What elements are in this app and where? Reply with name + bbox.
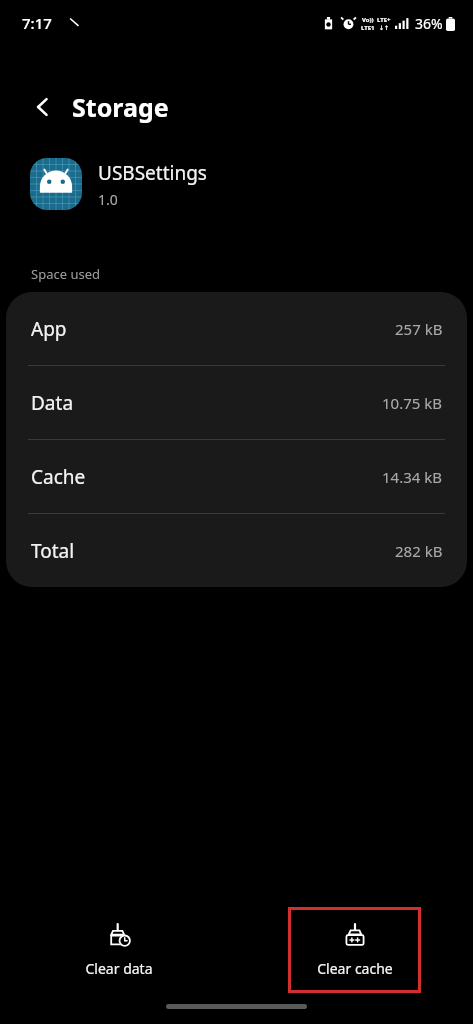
button[interactable]: Total	[6, 514, 467, 587]
staticText: 7:17	[22, 13, 52, 33]
button[interactable]: Clear data	[52, 907, 185, 993]
staticText: 282 kB	[395, 541, 443, 561]
staticText: USBSettings	[98, 160, 207, 186]
button[interactable]: App	[6, 292, 467, 365]
staticText: Data	[31, 390, 74, 416]
button[interactable]: Cache	[6, 440, 467, 513]
staticText: Storage	[72, 90, 169, 124]
staticText: Total	[31, 538, 75, 564]
button[interactable]: Clear cache	[288, 907, 421, 993]
staticText: LTE+	[377, 16, 391, 24]
button[interactable]: Back	[22, 86, 64, 128]
staticText: 14.34 kB	[382, 467, 443, 487]
staticText: 1.0	[98, 190, 118, 209]
staticText: Space used	[31, 265, 100, 283]
staticText: LTE1	[361, 24, 375, 32]
button[interactable]: Data	[6, 366, 467, 439]
staticText: 36%	[415, 14, 443, 33]
staticText: Vo))	[362, 16, 374, 24]
staticText: Clear cache	[317, 959, 393, 978]
staticText: ↓↑	[379, 24, 390, 31]
staticText: App	[31, 316, 67, 342]
staticText: 10.75 kB	[382, 393, 443, 413]
staticText: Clear data	[85, 959, 153, 978]
staticText: Cache	[31, 464, 86, 490]
staticText: 257 kB	[395, 319, 443, 339]
